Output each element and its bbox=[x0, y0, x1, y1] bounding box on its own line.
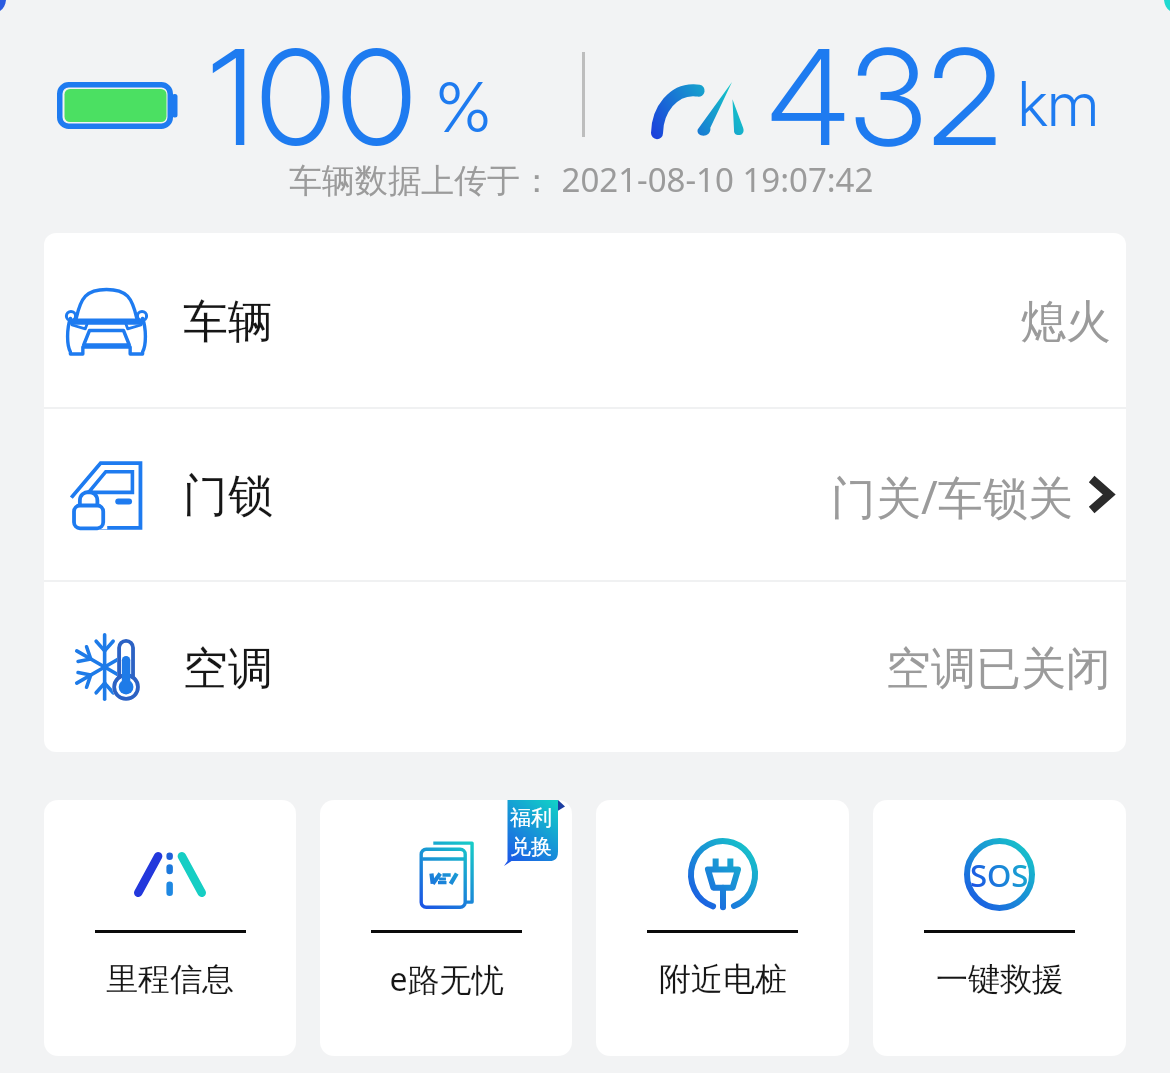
staticText: 一键救援 bbox=[936, 959, 1064, 999]
staticText: 福利 bbox=[510, 805, 552, 831]
button[interactable]: 车辆 bbox=[44, 233, 1126, 407]
staticText: 车辆 bbox=[183, 294, 273, 351]
staticText: 100 bbox=[209, 17, 418, 177]
staticText: % bbox=[435, 65, 493, 148]
button[interactable]: 门锁 bbox=[44, 409, 1126, 580]
button[interactable]: Service booklet bbox=[320, 800, 572, 1056]
staticText: e路无忧 bbox=[389, 957, 504, 1001]
staticText: 车辆数据上传于： 2021-08-10 19:07:42 bbox=[289, 157, 874, 202]
other: Nearby charging piles bbox=[688, 838, 758, 911]
staticText: SOS bbox=[970, 854, 1029, 896]
staticText: 门关/车锁关 bbox=[831, 466, 1073, 527]
other: Service booklet bbox=[419, 840, 474, 909]
button[interactable]: One-key rescue bbox=[873, 800, 1126, 1056]
other: Mileage info bbox=[134, 852, 206, 897]
staticText: 里程信息 bbox=[106, 959, 234, 999]
button[interactable]: 空调 bbox=[44, 582, 1126, 752]
staticText: 门锁 bbox=[183, 468, 273, 525]
staticText: 熄火 bbox=[1021, 294, 1111, 351]
staticText: 兑换 bbox=[510, 834, 552, 860]
staticText: 432 bbox=[768, 17, 1004, 177]
staticText: 附近电桩 bbox=[659, 959, 787, 999]
other: Battery 100 percent bbox=[57, 82, 179, 129]
staticText: km bbox=[1018, 66, 1099, 141]
button[interactable]: Mileage info bbox=[44, 800, 296, 1056]
other: Driving range bbox=[651, 82, 741, 136]
staticText: 空调已关闭 bbox=[886, 641, 1111, 698]
other: One-key rescue bbox=[964, 838, 1035, 911]
button[interactable]: Nearby charging piles bbox=[596, 800, 849, 1056]
staticText: 空调 bbox=[183, 641, 273, 698]
